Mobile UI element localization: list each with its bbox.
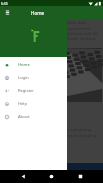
button[interactable]: Register <box>0 84 67 97</box>
button[interactable]: Help <box>0 97 67 110</box>
button[interactable]: Login <box>0 71 67 84</box>
staticText: Home <box>31 10 45 16</box>
button[interactable]: Recent apps <box>75 171 86 182</box>
staticText: 6:35 <box>1 1 8 6</box>
staticText: Register <box>18 88 34 94</box>
staticText: Help <box>18 101 27 107</box>
staticText: About <box>18 114 30 120</box>
button[interactable]: Home <box>46 171 57 182</box>
staticText: Material Design is Scotiabank For everyt… <box>4 127 99 143</box>
button[interactable]: Back <box>18 171 29 182</box>
button[interactable]: Home <box>0 58 67 71</box>
button[interactable]: Open navigation drawer <box>3 8 12 17</box>
staticText: Login <box>18 75 29 81</box>
button[interactable]: About <box>0 110 67 123</box>
staticText: Material Design UI Android Template App … <box>4 20 99 46</box>
staticText: 10/21/2019 <box>1 107 102 113</box>
staticText: Home <box>18 62 30 68</box>
